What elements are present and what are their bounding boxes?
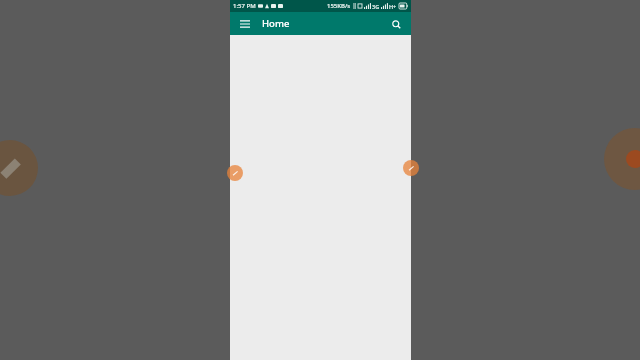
button[interactable]: Background app shortcut	[604, 128, 640, 190]
button[interactable]: Open navigation drawer	[236, 15, 254, 33]
button[interactable]: Search	[387, 15, 405, 33]
button[interactable]: Background app shortcut	[0, 140, 38, 196]
staticText: Home	[262, 17, 290, 30]
staticText: H+	[389, 3, 397, 10]
staticText: 3G	[372, 3, 380, 10]
staticText: 155KB/s	[327, 2, 351, 10]
staticText: 1:57 PM	[233, 2, 256, 10]
button[interactable]: Floating assistant button	[227, 165, 243, 181]
button[interactable]: Floating assistant button	[403, 160, 419, 176]
